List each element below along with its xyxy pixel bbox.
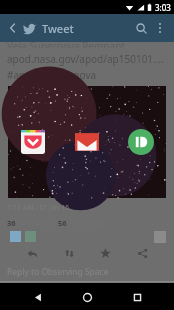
staticText: Tweet [42,21,74,36]
staticText: 36 [7,218,16,228]
button[interactable]: Reply to Observing Space [0,263,174,281]
button[interactable]: Share to Pushbullet [126,127,156,157]
staticText: #apod #supernova [7,68,97,82]
button[interactable]: More options [151,19,169,37]
staticText: 56 [58,218,67,228]
staticText: 1:15 AM - 01 Jan 15 [7,203,70,213]
button[interactable]: Favorite [95,243,115,263]
button[interactable]: Home [75,285,99,309]
button[interactable]: Retweet [59,243,79,263]
staticText: Reply to Observing Space [7,266,109,278]
staticText: apod.nasa.gov/apod/ap150101.... [7,52,164,66]
button[interactable]: Share to Gmail [72,127,102,157]
button[interactable]: Search [131,18,151,38]
button[interactable]: Back [5,20,21,36]
staticText: Vela Supernova Remnant [7,39,125,48]
staticText: 3:03 [155,2,171,13]
button[interactable]: Reply [22,243,42,263]
button[interactable]: Share [132,243,152,263]
button[interactable]: Share to Pocket [18,127,48,157]
button[interactable]: Back [26,285,50,309]
button[interactable]: Recents [125,285,149,309]
